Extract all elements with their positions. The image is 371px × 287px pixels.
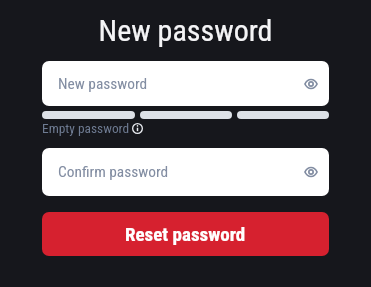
button[interactable]: Confirm password [42,148,329,196]
other: Password strength info [132,123,143,134]
staticText: Confirm password [58,163,169,181]
staticText: New password [58,75,148,93]
button[interactable]: Reset password [42,212,329,256]
staticText: Reset password [125,223,246,245]
other: Show password [303,164,319,180]
button[interactable]: New password [42,61,329,106]
staticText: New password [0,13,371,48]
other: Show password [303,76,319,92]
staticText: Empty password [42,121,130,137]
